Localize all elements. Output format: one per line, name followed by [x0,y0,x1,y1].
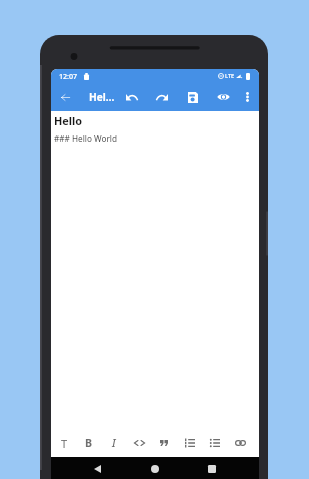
button[interactable]: Back [86,458,108,479]
button[interactable]: Quote [153,432,175,454]
staticText: T [61,436,68,451]
staticText: I [112,436,116,450]
button[interactable]: More options [236,86,258,108]
button[interactable]: Numbered list [179,432,201,454]
staticText: 12:07 [59,71,78,81]
button[interactable]: Bulleted list [204,432,226,454]
button[interactable]: Italic [103,432,125,454]
button[interactable]: Undo [121,86,143,108]
button[interactable]: Home [144,458,166,479]
button[interactable]: Code [128,432,150,454]
button[interactable]: Back [54,86,76,108]
staticText: B [85,436,93,450]
staticText: Hel… [89,90,115,104]
button[interactable]: Link [229,432,251,454]
staticText: LTE [225,72,235,80]
staticText: ### Hello World [54,133,117,144]
button[interactable]: Bold [78,432,100,454]
button[interactable]: Text style [53,432,75,454]
button[interactable]: Preview [212,86,234,108]
button[interactable]: Save [182,86,204,108]
staticText: Hello [54,113,83,128]
button[interactable]: Recents [201,458,223,479]
button[interactable]: Redo [151,86,173,108]
